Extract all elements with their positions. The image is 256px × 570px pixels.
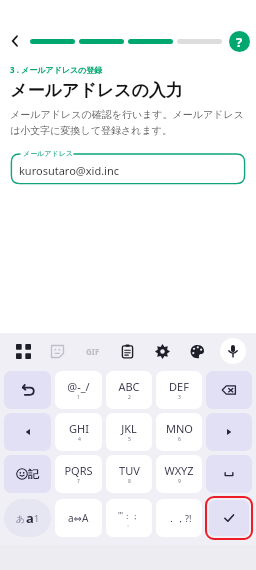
button[interactable]: PQRS [55, 455, 102, 493]
button[interactable]: JKL [106, 413, 152, 451]
button[interactable]: Stickers [40, 333, 75, 369]
button[interactable]: Back [0, 28, 30, 54]
button[interactable]: Function [4, 455, 51, 493]
button[interactable]: Function [4, 413, 51, 451]
button[interactable]: GHI [55, 413, 102, 451]
button[interactable]: Enter [209, 500, 249, 536]
button[interactable]: ABC [106, 371, 152, 409]
button[interactable]: '"：； [106, 499, 152, 537]
button[interactable]: Function [206, 455, 252, 493]
staticText: 4 [78, 436, 81, 443]
button[interactable]: ．，?! [156, 499, 202, 537]
staticText: 記 [28, 467, 39, 481]
button[interactable]: Clipboard [110, 333, 145, 369]
staticText: 2 [128, 394, 131, 401]
button[interactable]: @-_/ [55, 371, 102, 409]
staticText: 1 [34, 512, 40, 524]
staticText: 1 [77, 394, 80, 401]
staticText: DEF [169, 379, 189, 394]
staticText: 3 . メールアドレスの登録 [10, 64, 103, 75]
button[interactable]: Function [206, 371, 252, 409]
button[interactable]: WXYZ [156, 455, 202, 493]
button[interactable]: あ [4, 499, 51, 537]
staticText: a [26, 509, 34, 527]
button[interactable]: a⇔A [55, 499, 102, 537]
button[interactable]: TUV [106, 455, 152, 493]
staticText: ．，?! [167, 512, 192, 524]
staticText: あ [16, 513, 26, 524]
button[interactable]: Function [4, 371, 51, 409]
button[interactable]: Function [206, 413, 252, 451]
staticText: 9 [178, 478, 181, 485]
staticText: メールアドレス [23, 149, 73, 158]
staticText: GIF [86, 346, 100, 357]
staticText: WXYZ [164, 463, 194, 478]
button[interactable]: Voice input [215, 333, 250, 369]
button[interactable]: Themes [180, 333, 215, 369]
button[interactable]: Help [222, 28, 256, 54]
staticText: ABC [118, 379, 140, 394]
staticText: TUV [119, 463, 140, 478]
staticText: 7 [77, 478, 80, 485]
staticText: 。 [127, 521, 132, 527]
staticText: 6 [178, 436, 181, 443]
staticText: JKL [121, 421, 137, 436]
button[interactable]: DEF [156, 371, 202, 409]
staticText: GHI [69, 421, 89, 436]
staticText: '"：； [118, 510, 140, 521]
button[interactable]: Settings [145, 333, 180, 369]
button[interactable]: MNO [156, 413, 202, 451]
staticText: 5 [128, 436, 131, 443]
staticText: 3 [178, 394, 181, 401]
staticText: a⇔A [68, 511, 89, 525]
staticText: 8 [128, 478, 131, 485]
staticText: kurosutaro@xid.inc [19, 163, 120, 178]
staticText: メールアドレスの入力 [10, 80, 183, 101]
staticText: メールアドレスの確認を行います。メールアドレスは小文字に変換して登録されます。 [10, 108, 246, 137]
staticText: @-_/ [67, 379, 90, 394]
staticText: MNO [166, 421, 193, 436]
staticText: PQRS [64, 463, 93, 478]
staticText: ? [236, 33, 243, 51]
button[interactable]: Apps [6, 333, 40, 369]
button[interactable]: GIF [75, 333, 110, 369]
